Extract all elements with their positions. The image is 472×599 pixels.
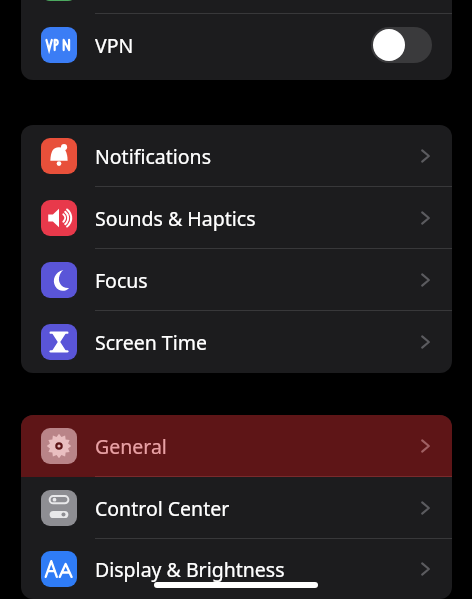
button[interactable]: Personal Hotspot [21, 0, 452, 14]
staticText: Sounds & Haptics [95, 205, 256, 232]
button[interactable]: Sounds & Haptics [21, 187, 452, 249]
staticText: Notifications [95, 143, 211, 170]
staticText: Control Center [95, 495, 230, 522]
button[interactable]: VPN toggle [371, 27, 432, 63]
button[interactable]: Screen Time [21, 311, 452, 373]
staticText: General [95, 433, 167, 460]
button[interactable]: General [21, 415, 452, 477]
staticText: VPN [95, 32, 134, 59]
button[interactable]: Focus [21, 249, 452, 311]
staticText: Display & Brightness [95, 556, 285, 583]
button[interactable]: Notifications [21, 125, 452, 187]
staticText: Screen Time [95, 329, 207, 356]
staticText: Focus [95, 267, 148, 294]
button[interactable]: Control Center [21, 477, 452, 539]
button[interactable]: Display & Brightness [21, 539, 452, 599]
button[interactable]: VPN [21, 14, 452, 76]
